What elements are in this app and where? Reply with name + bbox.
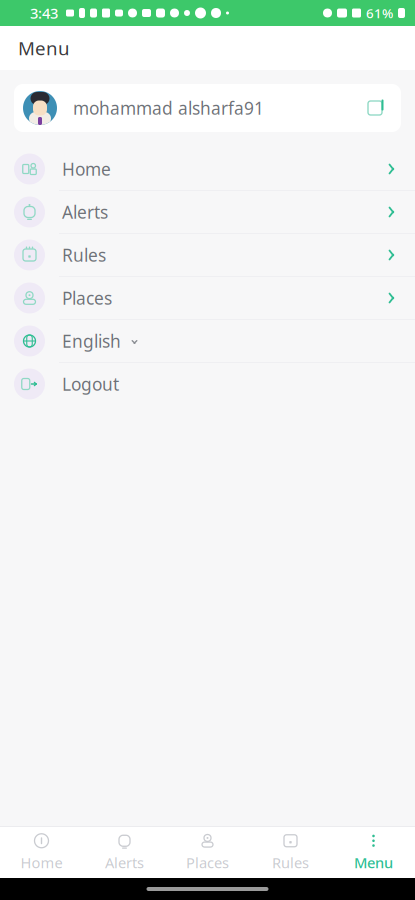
staticText: Menu — [354, 853, 393, 872]
button[interactable]: Menu — [332, 827, 415, 878]
button[interactable]: Home — [0, 148, 415, 191]
button[interactable]: Logout — [0, 363, 415, 406]
staticText: Alerts — [105, 853, 144, 872]
staticText: Alerts — [62, 200, 108, 223]
button[interactable]: Alerts — [83, 827, 166, 878]
staticText: Home — [20, 853, 62, 872]
staticText: Places — [62, 286, 112, 309]
staticText: Places — [186, 853, 229, 872]
button[interactable]: Alerts — [0, 191, 415, 234]
staticText: mohammad alsharfa91 — [73, 96, 264, 119]
staticText: English — [62, 329, 121, 352]
button[interactable]: English — [0, 320, 415, 363]
staticText: 3:43 — [30, 3, 58, 23]
staticText: Rules — [62, 243, 106, 266]
staticText: Logout — [62, 372, 119, 395]
button[interactable]: Places — [166, 827, 249, 878]
button[interactable]: Places — [0, 277, 415, 320]
button[interactable]: Home — [0, 827, 83, 878]
button[interactable]: mohammad alsharfa91 — [14, 84, 401, 132]
staticText: Menu — [18, 36, 70, 60]
staticText: Home — [62, 157, 111, 180]
staticText: 61% — [366, 4, 393, 22]
staticText: Rules — [272, 853, 309, 872]
button[interactable]: Rules — [0, 234, 415, 277]
button[interactable]: Rules — [249, 827, 332, 878]
